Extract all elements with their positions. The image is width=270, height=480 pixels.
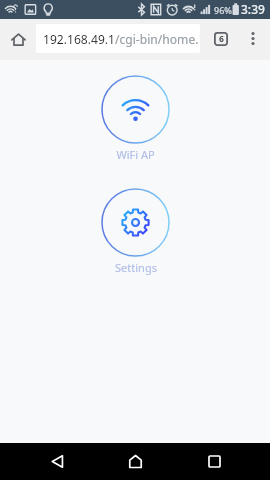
staticText: 96% bbox=[214, 4, 232, 16]
button[interactable]: Recent apps bbox=[192, 443, 236, 480]
button[interactable]: Home bbox=[113, 443, 157, 480]
button[interactable]: 192.168.49.1 bbox=[36, 24, 200, 53]
staticText: Settings bbox=[115, 260, 157, 275]
button[interactable]: Tabs, 6 open bbox=[207, 25, 234, 52]
button[interactable]: Settings bbox=[101, 188, 170, 275]
staticText: 192.168.49.1 bbox=[43, 31, 115, 47]
staticText: 3:39 bbox=[241, 1, 265, 17]
button[interactable]: Back bbox=[35, 443, 79, 480]
button[interactable]: Home page bbox=[0, 22, 36, 57]
staticText: /cgi-bin/home. bbox=[115, 31, 199, 47]
button[interactable]: More options bbox=[240, 25, 266, 52]
button[interactable]: WiFi AP bbox=[101, 75, 170, 162]
staticText: WiFi AP bbox=[116, 147, 155, 162]
staticText: 6 bbox=[219, 33, 224, 45]
